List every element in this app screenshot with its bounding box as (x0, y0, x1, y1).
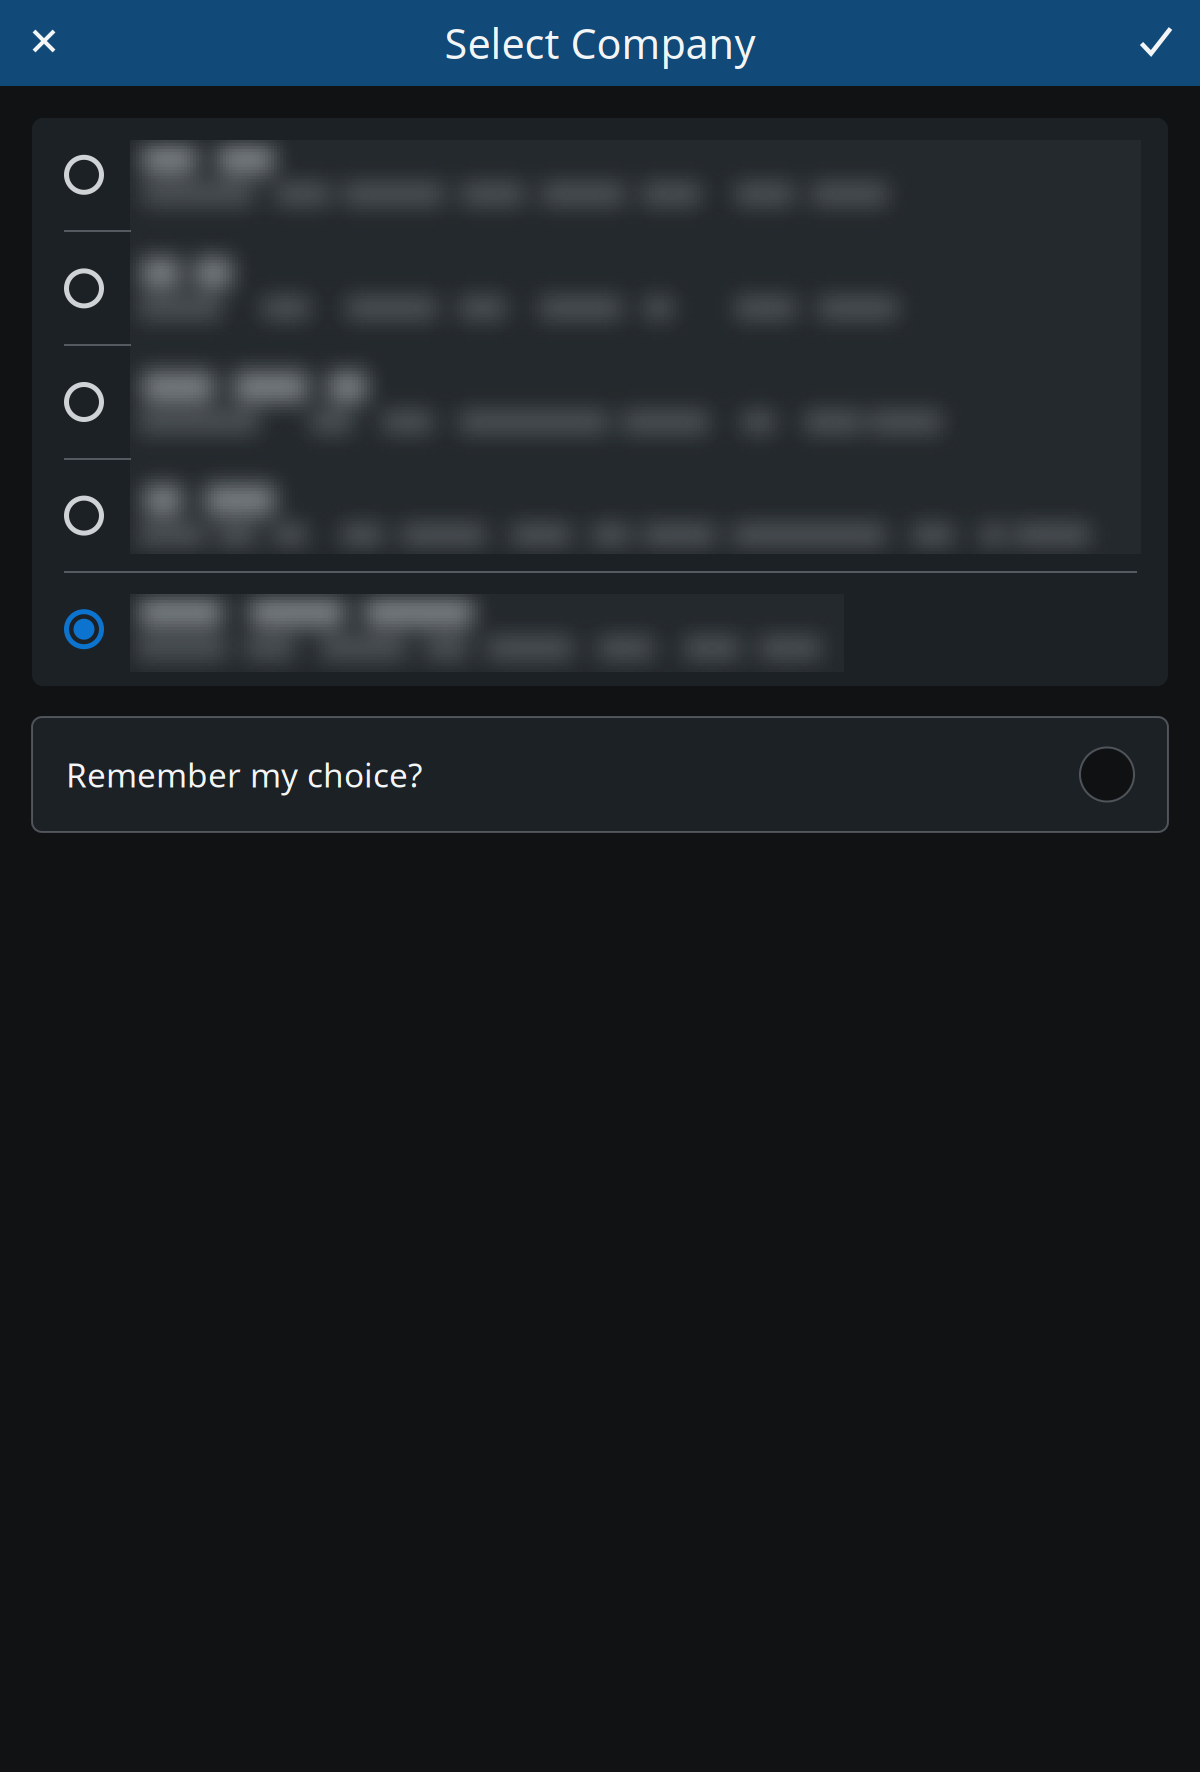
button[interactable]: Remember my choice? (32, 717, 1168, 832)
button[interactable]: Close (0, 0, 88, 86)
staticText: Select Company (444, 16, 755, 70)
staticText: Remember my choice? (66, 752, 422, 797)
button[interactable] (32, 572, 1168, 686)
button[interactable]: Confirm (1112, 0, 1200, 86)
button[interactable] (32, 459, 1168, 572)
button[interactable] (32, 118, 1168, 232)
button[interactable] (32, 232, 1168, 345)
button[interactable] (32, 345, 1168, 459)
